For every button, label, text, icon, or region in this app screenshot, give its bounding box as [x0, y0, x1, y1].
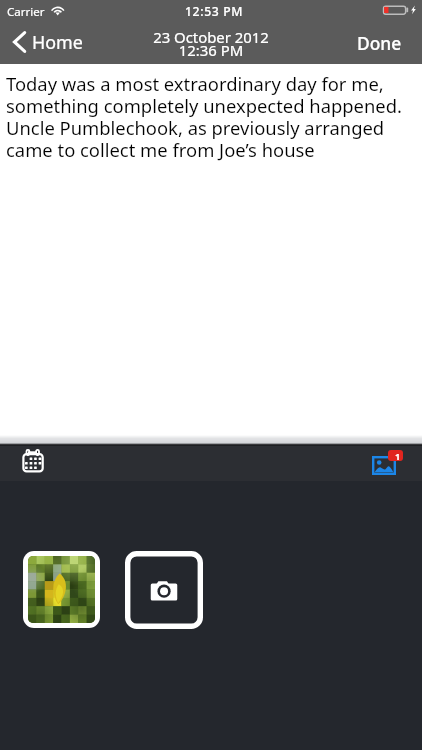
staticText: Done	[357, 31, 402, 55]
button[interactable]: Photo	[23, 551, 100, 628]
staticText: Today was a most extraordinary day for m…	[6, 74, 406, 162]
button[interactable]: Calendar	[10, 446, 57, 481]
staticText: 12:53 PM	[185, 3, 244, 20]
button[interactable]: Photos	[360, 446, 422, 480]
staticText: Carrier	[7, 4, 45, 20]
staticText: 23 October 2012 12:36 PM	[0, 27, 422, 60]
staticText: Home	[32, 30, 83, 54]
staticText: 1	[395, 450, 401, 461]
button[interactable]: Take photo	[125, 551, 203, 629]
button[interactable]: Done	[343, 23, 422, 63]
button[interactable]: Home	[5, 26, 95, 58]
